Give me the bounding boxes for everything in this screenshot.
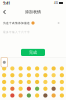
button[interactable]: Emoji — [25, 92, 33, 99]
button[interactable]: Emoji — [58, 72, 66, 79]
button[interactable]: Emoji — [49, 65, 58, 72]
button[interactable]: Emoji — [0, 72, 8, 79]
button[interactable]: Back — [0, 6, 9, 18]
button[interactable]: Emoji — [49, 72, 58, 79]
button[interactable]: Emoji — [0, 79, 8, 85]
staticText: 添加表情 — [25, 9, 41, 14]
button[interactable]: Emoji — [58, 85, 66, 92]
staticText: 完成 — [29, 50, 37, 55]
button[interactable]: Emoji — [8, 85, 16, 92]
button[interactable]: Emoji — [25, 85, 33, 92]
button[interactable]: Emoji — [25, 65, 33, 72]
button[interactable]: Emoji — [0, 85, 8, 92]
button[interactable]: Emoji — [49, 85, 58, 92]
button[interactable]: Emoji — [8, 79, 16, 85]
button[interactable]: Emoji — [41, 92, 49, 99]
button[interactable]: Emoji — [0, 65, 8, 72]
button[interactable]: Emoji — [41, 85, 49, 92]
staticText: 最多可输入十六个字 — [3, 30, 30, 34]
button[interactable]: Emoji — [25, 72, 33, 79]
staticText: 4G — [54, 1, 58, 5]
button[interactable]: Emoji — [33, 72, 41, 79]
button[interactable]: Emoji — [49, 79, 58, 85]
button[interactable]: Emoji — [33, 92, 41, 99]
button[interactable]: Emoji — [8, 92, 16, 99]
button[interactable]: Emoji — [16, 92, 25, 99]
button[interactable]: Emoji — [33, 79, 41, 85]
button[interactable]: Emoji — [41, 79, 49, 85]
button[interactable]: Emoji — [58, 79, 66, 85]
button[interactable]: Emoji — [0, 92, 8, 99]
button[interactable]: Emoji — [16, 85, 25, 92]
button[interactable]: Emoji — [8, 65, 16, 72]
button[interactable]: Emoji — [16, 72, 25, 79]
button[interactable]: Emoji — [16, 79, 25, 85]
button[interactable]: Emoji — [41, 65, 49, 72]
button[interactable]: Emoji — [16, 65, 25, 72]
button[interactable]: Emoji — [33, 65, 41, 72]
button[interactable]: Emoji — [8, 72, 16, 79]
button[interactable]: Emoji — [33, 85, 41, 92]
button[interactable]: Emoji — [58, 92, 66, 99]
button[interactable]: Emoji — [58, 65, 66, 72]
staticText: 9:41 — [3, 0, 10, 6]
button[interactable]: Emoji — [41, 72, 49, 79]
staticText: 为这个表情添加描述 — [3, 21, 30, 25]
button[interactable]: Emoji — [25, 79, 33, 85]
button[interactable]: 完成 — [21, 49, 45, 56]
button[interactable]: Emoji — [49, 92, 58, 99]
